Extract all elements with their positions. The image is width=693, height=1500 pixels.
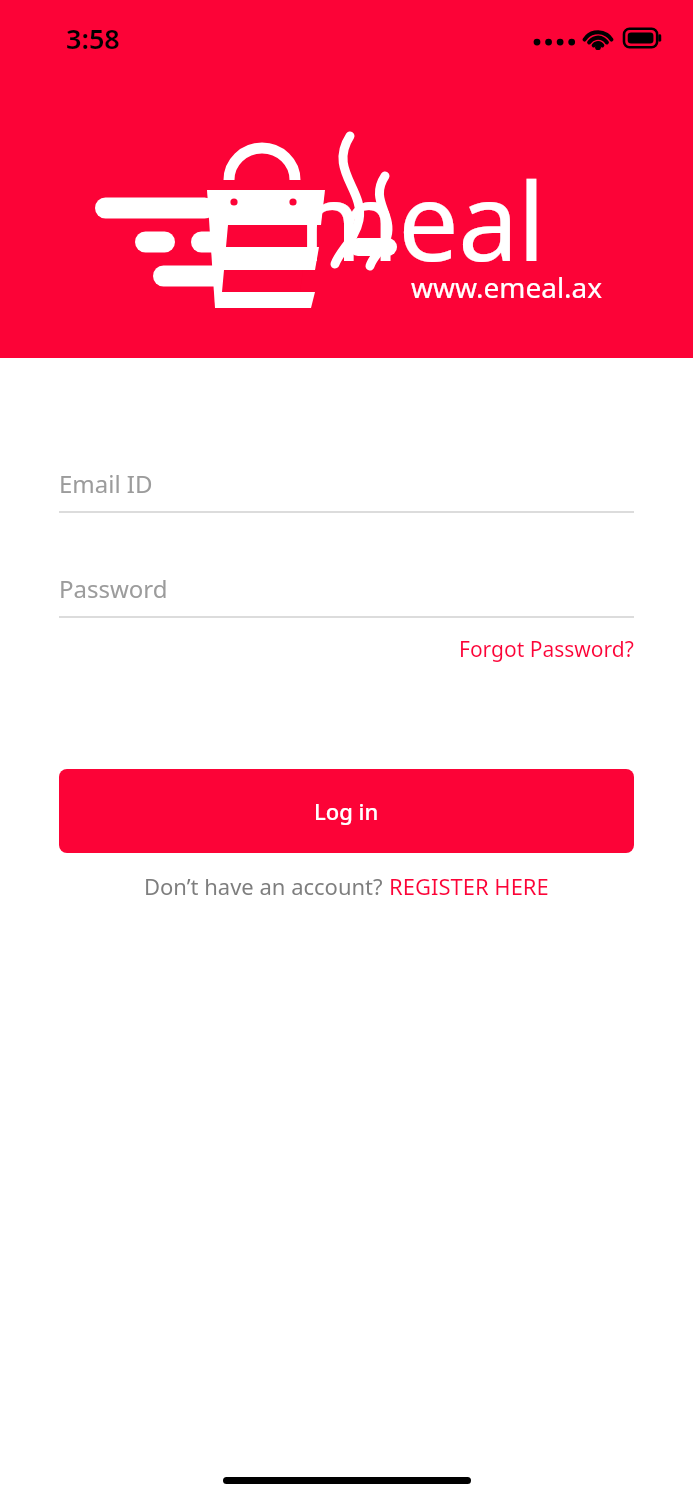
staticText: meal <box>298 146 545 293</box>
button[interactable]: REGISTER HERE <box>389 871 549 901</box>
staticText: REGISTER HERE <box>389 871 549 901</box>
button[interactable]: Password <box>59 567 634 618</box>
staticText: 3:58 <box>66 20 120 57</box>
button[interactable]: Log in <box>59 769 634 853</box>
other: E-meal logo <box>95 126 615 314</box>
staticText: Log in <box>314 796 379 826</box>
staticText: Don’t have an account? <box>144 871 389 901</box>
staticText: www.emeal.ax <box>411 268 603 306</box>
button[interactable]: Email ID <box>59 462 634 513</box>
button[interactable]: Forgot Password? <box>459 630 634 669</box>
staticText: Forgot Password? <box>459 635 634 664</box>
staticText: Password <box>59 572 168 605</box>
staticText: Email ID <box>59 467 153 500</box>
other: Signal, Wi-Fi and battery status <box>533 21 663 55</box>
